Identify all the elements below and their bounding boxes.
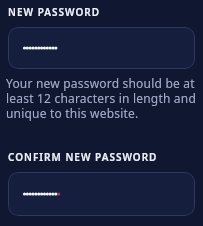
button[interactable] (8, 27, 195, 69)
button[interactable] (8, 172, 195, 216)
staticText: NEW PASSWORD (8, 5, 101, 19)
staticText: Your new password should be at least 12 … (6, 75, 196, 121)
staticText: CONFIRM NEW PASSWORD (8, 150, 158, 164)
